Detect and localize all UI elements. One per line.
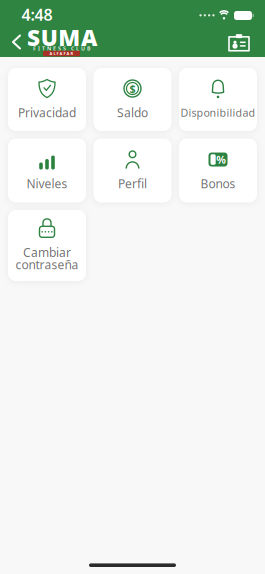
- button[interactable]: Cambiar: [8, 210, 86, 281]
- staticText: FITNESS CLUB: [33, 45, 91, 52]
- staticText: SUMA: [27, 22, 97, 52]
- staticText: Bonos: [200, 175, 235, 191]
- staticText: $: [129, 81, 135, 96]
- button[interactable]: Perfil: [93, 138, 171, 202]
- button[interactable]: Membership card: [220, 27, 258, 57]
- staticText: Niveles: [26, 175, 67, 191]
- button[interactable]: Back: [4, 27, 28, 57]
- button[interactable]: Niveles: [8, 138, 86, 202]
- staticText: ALFAFAR: [49, 51, 73, 56]
- button[interactable]: Privacidad: [8, 68, 86, 131]
- button[interactable]: $: [93, 68, 171, 131]
- staticText: Cambiar: [23, 244, 71, 260]
- staticText: Disponibilidad: [180, 105, 255, 120]
- button[interactable]: %: [179, 138, 257, 202]
- staticText: Privacidad: [18, 104, 76, 120]
- staticText: Perfil: [118, 175, 147, 191]
- staticText: %: [216, 152, 226, 167]
- button[interactable]: Disponibilidad: [179, 68, 257, 131]
- staticText: Saldo: [117, 104, 148, 120]
- staticText: 4:48: [21, 4, 52, 25]
- staticText: contraseña: [15, 257, 78, 273]
